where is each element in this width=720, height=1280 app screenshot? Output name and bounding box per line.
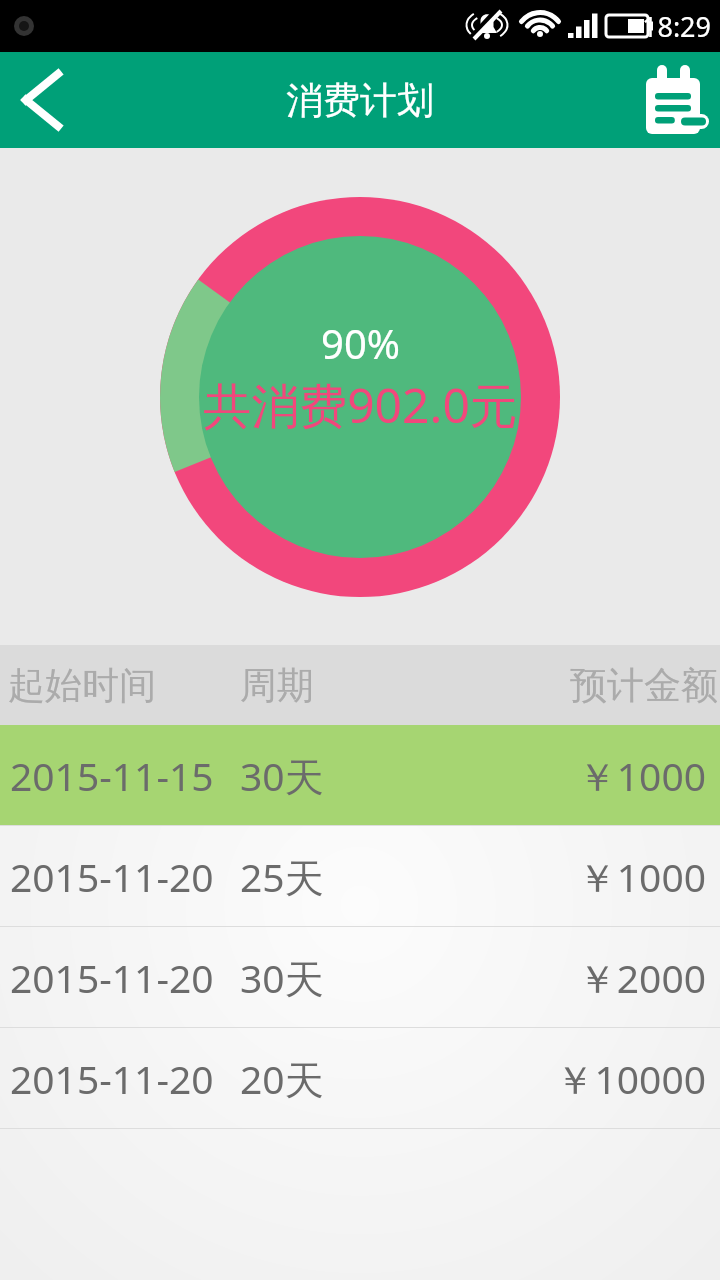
staticText: 18:29 — [642, 8, 712, 45]
staticText: 90% — [321, 316, 400, 370]
button[interactable]: 2015-11-15 — [0, 725, 720, 825]
staticText: 30天 — [240, 749, 444, 802]
staticText: ￥10000 — [444, 1052, 706, 1105]
staticText: ￥1000 — [444, 749, 706, 802]
button[interactable]: Plan list — [624, 52, 720, 148]
staticText: 25天 — [240, 850, 444, 903]
button[interactable]: 2015-11-20 — [0, 1028, 720, 1128]
staticText: 2015-11-15 — [10, 749, 240, 802]
staticText: 周期 — [240, 662, 444, 709]
staticText: 预计金额 — [444, 662, 718, 709]
staticText: ￥1000 — [444, 850, 706, 903]
staticText: 2015-11-20 — [10, 850, 240, 903]
staticText: 共消费902.0元 — [203, 372, 518, 438]
staticText: 2015-11-20 — [10, 951, 240, 1004]
staticText: ￥2000 — [444, 951, 706, 1004]
button[interactable]: 2015-11-20 — [0, 927, 720, 1027]
staticText: 20天 — [240, 1052, 444, 1105]
button[interactable]: Back — [0, 52, 96, 148]
staticText: 2015-11-20 — [10, 1052, 240, 1105]
staticText: 30天 — [240, 951, 444, 1004]
button[interactable]: 2015-11-20 — [0, 826, 720, 926]
staticText: 起始时间 — [8, 662, 240, 709]
staticText: 消费计划 — [286, 77, 434, 124]
